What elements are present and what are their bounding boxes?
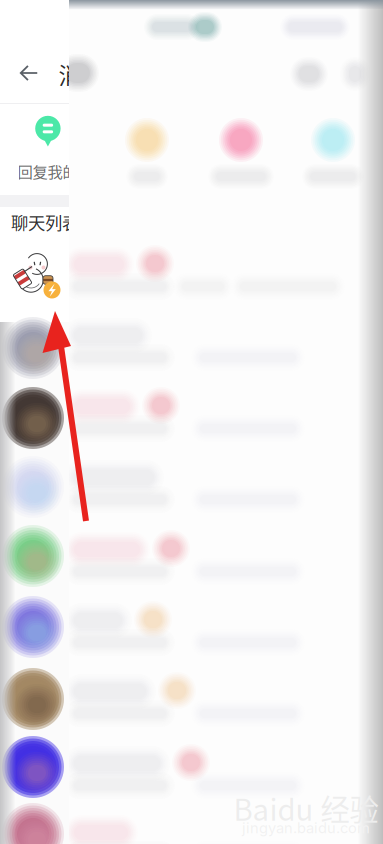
- staticText: 回复我的: [17, 160, 77, 182]
- button[interactable]: Current chat avatar: [8, 247, 64, 307]
- staticText: 消: [58, 58, 81, 90]
- staticText: jingyan.baidu.com: [242, 819, 370, 837]
- staticText: 聊天列表: [11, 209, 79, 235]
- button[interactable]: Back: [9, 53, 49, 93]
- button[interactable]: 回复我的: [0, 104, 96, 194]
- staticText: Baidu 经验: [233, 787, 378, 829]
